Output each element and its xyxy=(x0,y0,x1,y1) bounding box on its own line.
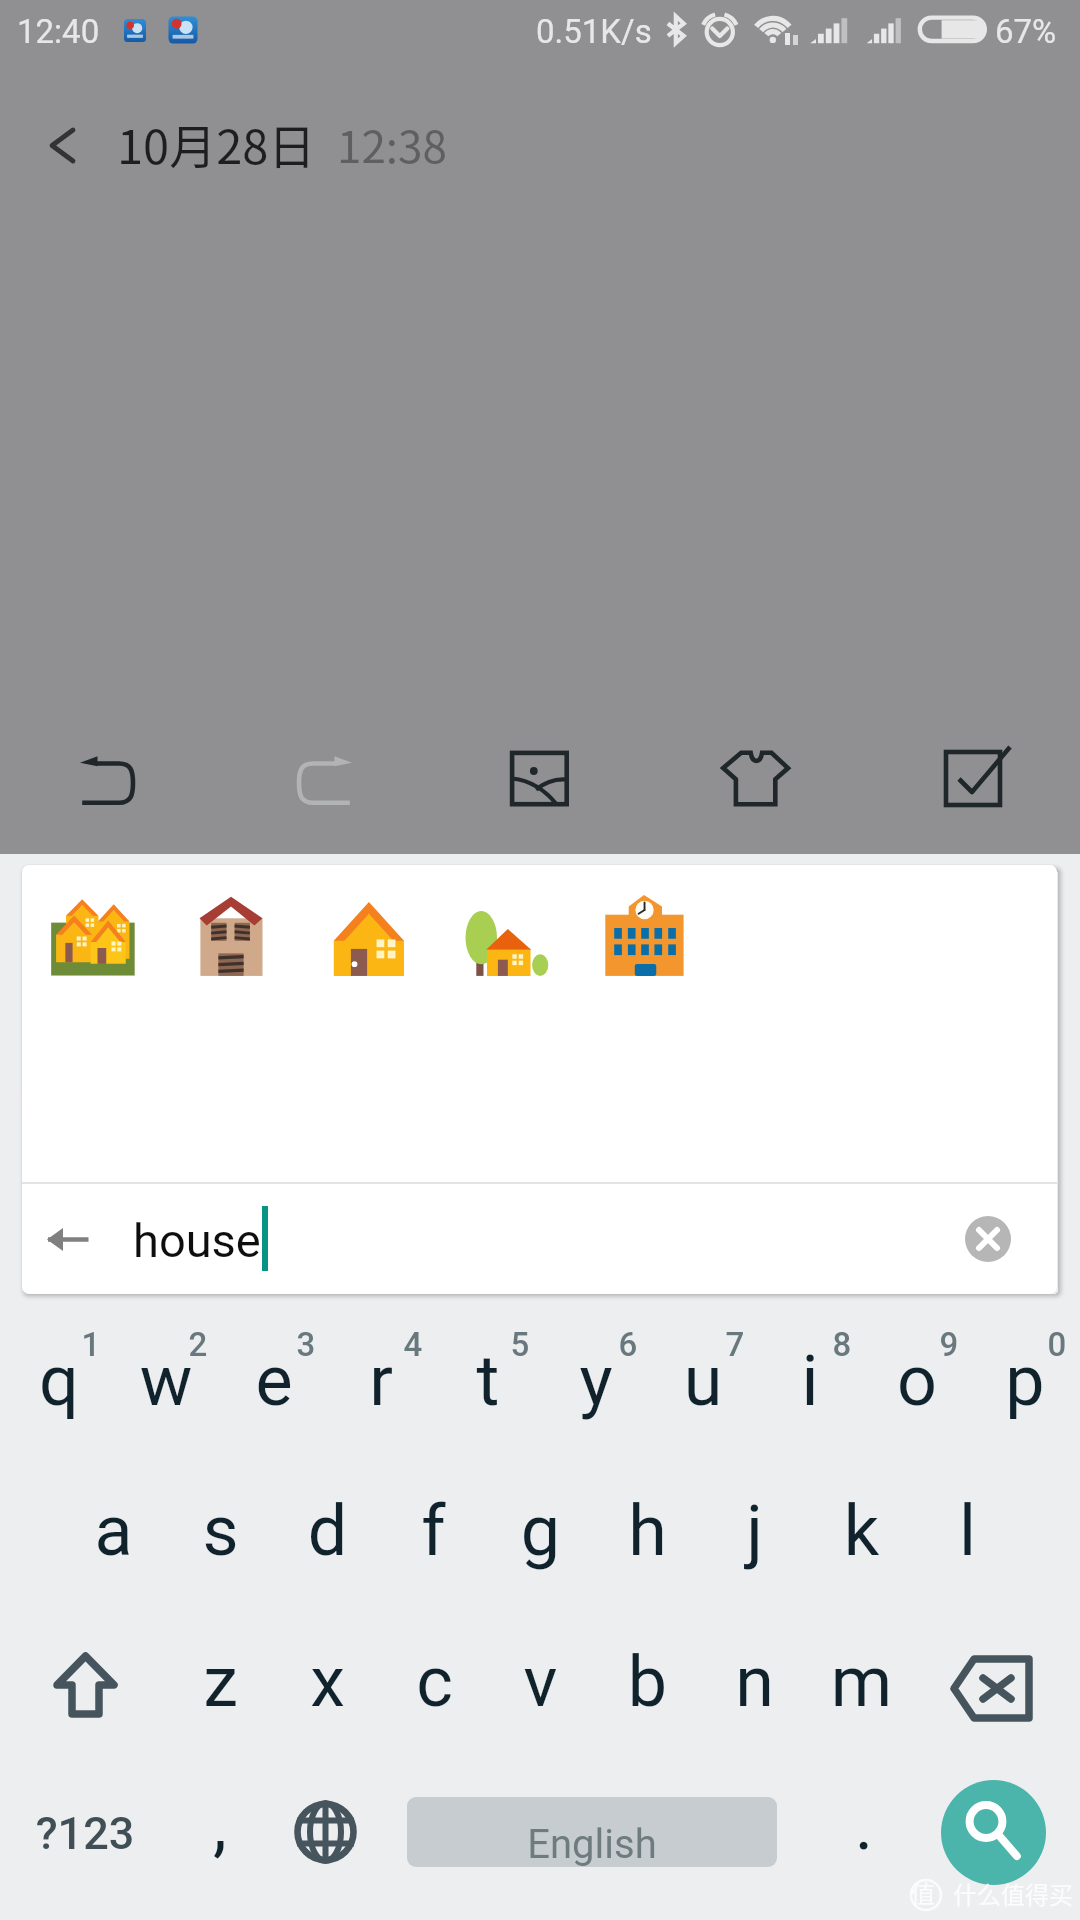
button[interactable]: House xyxy=(299,870,436,1007)
staticText: v xyxy=(487,1641,594,1723)
button[interactable]: Undo xyxy=(54,723,164,833)
button[interactable]: f xyxy=(380,1460,487,1610)
button[interactable]: Redo xyxy=(268,723,378,833)
staticText: a xyxy=(60,1490,167,1572)
button[interactable]: Backspace xyxy=(914,1610,1080,1760)
button[interactable]: Clear text xyxy=(942,1194,1034,1286)
button[interactable]: t xyxy=(434,1310,542,1460)
staticText: t xyxy=(434,1340,542,1422)
staticText: 0.51K/s xyxy=(536,12,652,51)
button[interactable]: g xyxy=(487,1460,594,1610)
staticText: . xyxy=(809,1784,919,1866)
staticText: y xyxy=(542,1340,650,1422)
staticText: 9 xyxy=(649,1325,1080,1364)
staticText: e xyxy=(220,1340,328,1422)
button[interactable]: b xyxy=(594,1610,701,1760)
button[interactable]: z xyxy=(167,1610,274,1760)
staticText: 0 xyxy=(757,1325,1080,1364)
staticText: 3 xyxy=(6,1325,606,1364)
button[interactable]: Derelict house xyxy=(162,870,299,1007)
button[interactable]: k xyxy=(808,1460,915,1610)
staticText: u xyxy=(649,1340,757,1422)
staticText: 4 xyxy=(113,1325,713,1364)
staticText: 5 xyxy=(220,1325,820,1364)
staticText: 7 xyxy=(435,1325,1035,1364)
staticText: f xyxy=(380,1490,487,1572)
button[interactable]: d xyxy=(274,1460,381,1610)
button[interactable]: v xyxy=(487,1610,594,1760)
staticText: i xyxy=(756,1340,864,1422)
staticText: s xyxy=(167,1490,274,1572)
staticText: m xyxy=(808,1641,915,1723)
staticText: p xyxy=(971,1340,1079,1422)
button[interactable]: Select xyxy=(918,723,1028,833)
staticText: 8 xyxy=(542,1325,1080,1364)
staticText: 什么值得买 xyxy=(953,1876,1073,1911)
button[interactable]: house xyxy=(114,1186,942,1294)
staticText: 12:38 xyxy=(337,112,447,176)
staticText: 12:40 xyxy=(17,12,100,51)
button[interactable]: Image xyxy=(485,723,595,833)
button[interactable]: a xyxy=(60,1460,167,1610)
staticText: , xyxy=(172,1784,268,1866)
staticText: h xyxy=(594,1490,701,1572)
button[interactable]: p xyxy=(971,1310,1079,1460)
staticText: ?123 xyxy=(0,1807,173,1860)
staticText: w xyxy=(112,1340,220,1422)
button[interactable]: Search xyxy=(941,1780,1046,1885)
staticText: x xyxy=(274,1641,381,1723)
button[interactable]: Back to emoji xyxy=(22,1194,114,1286)
button[interactable]: , xyxy=(172,1760,268,1910)
button[interactable]: u xyxy=(649,1310,757,1460)
staticText: 10月28日 xyxy=(117,109,316,177)
button[interactable]: s xyxy=(167,1460,274,1610)
button[interactable]: x xyxy=(274,1610,381,1760)
button[interactable]: Shift xyxy=(0,1610,166,1760)
button[interactable]: Sticker xyxy=(702,723,812,833)
staticText: n xyxy=(701,1641,808,1723)
button[interactable]: m xyxy=(808,1610,915,1760)
button[interactable]: h xyxy=(594,1460,701,1610)
button[interactable]: ?123 xyxy=(0,1760,173,1910)
staticText: 67% xyxy=(995,12,1057,51)
staticText: English xyxy=(407,1821,777,1867)
staticText: j xyxy=(701,1490,808,1572)
button[interactable]: r xyxy=(327,1310,435,1460)
button[interactable]: e xyxy=(220,1310,328,1460)
staticText: d xyxy=(274,1490,381,1572)
button[interactable]: House with garden xyxy=(437,870,574,1007)
staticText: house xyxy=(133,1213,261,1268)
staticText: r xyxy=(327,1340,435,1422)
staticText: 1 xyxy=(0,1325,391,1364)
staticText: l xyxy=(914,1490,1021,1572)
staticText: q xyxy=(5,1340,113,1422)
button[interactable]: y xyxy=(542,1310,650,1460)
staticText: g xyxy=(487,1490,594,1572)
button[interactable]: English xyxy=(407,1797,777,1867)
button[interactable]: . xyxy=(809,1760,919,1910)
staticText: 值 xyxy=(911,1875,935,1910)
staticText: o xyxy=(863,1340,971,1422)
button[interactable]: Houses xyxy=(25,870,162,1007)
staticText: b xyxy=(594,1641,701,1723)
button[interactable]: c xyxy=(381,1610,488,1760)
button[interactable]: w xyxy=(112,1310,220,1460)
button[interactable]: o xyxy=(863,1310,971,1460)
button[interactable]: j xyxy=(701,1460,808,1610)
button[interactable]: Back xyxy=(26,109,98,181)
button[interactable]: q xyxy=(5,1310,113,1460)
button[interactable]: Change language xyxy=(272,1760,380,1910)
staticText: 6 xyxy=(328,1325,928,1364)
button[interactable]: i xyxy=(756,1310,864,1460)
button[interactable]: n xyxy=(701,1610,808,1760)
staticText: 2 xyxy=(0,1325,498,1364)
staticText: k xyxy=(808,1490,915,1572)
staticText: z xyxy=(167,1641,274,1723)
button[interactable]: School xyxy=(575,870,712,1007)
button[interactable]: l xyxy=(914,1460,1021,1610)
staticText: c xyxy=(381,1641,488,1723)
